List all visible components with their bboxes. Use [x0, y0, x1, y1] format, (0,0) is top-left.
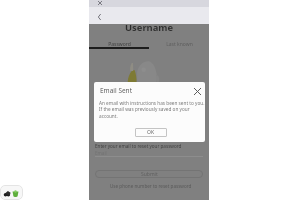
staticText: Use phone number to reset password [110, 183, 192, 189]
staticText: An email with instructions has been sent… [99, 100, 205, 120]
staticText: Password [108, 41, 131, 48]
staticText: Last known [166, 41, 193, 48]
staticText: Submit [141, 171, 158, 178]
button[interactable]: Back [95, 12, 104, 21]
button[interactable]: Use phone number to reset password [95, 182, 207, 189]
staticText: OK [147, 129, 155, 136]
staticText: Enter your email to reset your password [95, 143, 182, 149]
button[interactable]: Close dialog [191, 85, 203, 97]
button[interactable]: Last known [149, 40, 209, 49]
button[interactable]: Close [95, 0, 104, 6]
button[interactable]: Password [89, 40, 149, 49]
staticText: Username [125, 21, 174, 34]
staticText: Email Sent [100, 86, 132, 95]
button[interactable]: OK [135, 128, 167, 137]
staticText: Email [95, 150, 107, 156]
button[interactable]: Submit [95, 170, 203, 178]
